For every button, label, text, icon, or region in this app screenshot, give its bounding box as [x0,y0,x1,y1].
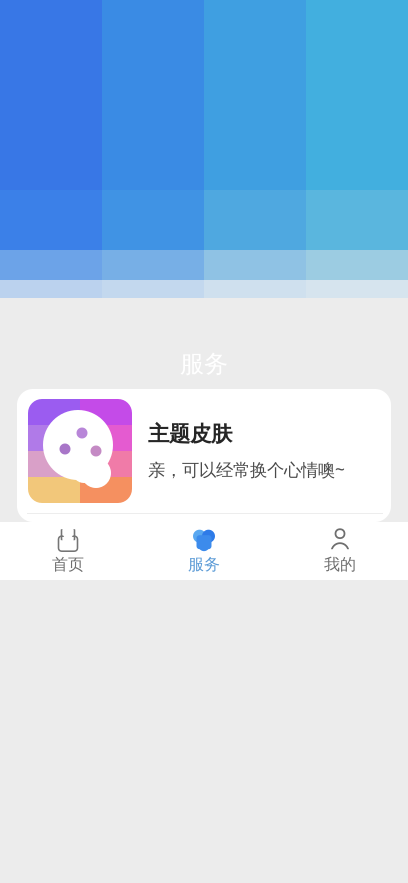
button[interactable]: 我的 [272,520,408,582]
button[interactable]: 主题皮肤 [17,389,391,513]
staticText: 首页 [52,555,84,574]
staticText: 主题皮肤 [148,421,232,447]
button[interactable]: 首页 [0,520,136,582]
staticText: 亲，可以经常换个心情噢~ [148,458,345,481]
staticText: 服务 [188,555,220,574]
staticText: 我的 [324,555,356,574]
staticText: 服务 [180,349,228,379]
button[interactable]: 服务 [136,520,272,582]
